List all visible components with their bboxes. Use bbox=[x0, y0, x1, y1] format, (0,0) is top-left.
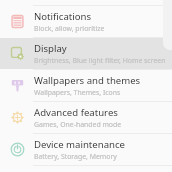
staticText: Battery, Storage, Memory bbox=[34, 152, 117, 161]
staticText: Advanced features bbox=[34, 106, 118, 119]
button[interactable]: Device maintenance bbox=[0, 134, 172, 165]
staticText: Games, One-handed mode bbox=[34, 120, 122, 129]
staticText: Display bbox=[34, 42, 67, 55]
staticText: Brightness, Blue light filter, Home scre… bbox=[34, 56, 166, 65]
button[interactable]: Advanced features bbox=[0, 102, 172, 133]
staticText: Wallpapers and themes bbox=[34, 74, 141, 87]
button[interactable]: Wallpapers and themes bbox=[0, 70, 172, 101]
staticText: Notifications bbox=[34, 10, 92, 23]
button[interactable]: Notifications bbox=[0, 6, 172, 37]
staticText: Device maintenance bbox=[34, 138, 125, 151]
staticText: Block, allow, prioritize bbox=[34, 24, 105, 33]
staticText: Wallpapers, Themes, Icons bbox=[34, 88, 121, 97]
button[interactable]: Display bbox=[0, 38, 172, 69]
